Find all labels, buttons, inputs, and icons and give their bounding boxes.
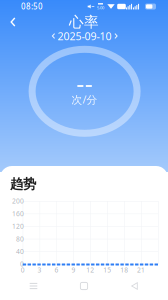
staticText: 200 [12, 197, 24, 205]
staticText: 心率 [69, 13, 99, 31]
staticText: 6 [54, 266, 58, 274]
staticText: 08:50 [21, 1, 43, 12]
staticText: 15 [103, 266, 111, 274]
button[interactable]: 主屏幕 [67, 276, 101, 296]
staticText: 0 [20, 260, 24, 268]
staticText: 次/分 [72, 92, 98, 106]
staticText: 80 [16, 234, 24, 243]
staticText: 0 [21, 266, 25, 274]
button[interactable]: 最近任务 [16, 276, 50, 296]
staticText: 趋势 [10, 176, 36, 192]
staticText: 21 [137, 266, 145, 274]
button[interactable]: 返回 [1, 10, 25, 34]
staticText: 160 [12, 209, 24, 218]
staticText: 18 [120, 266, 128, 274]
button[interactable]: 前一天 [47, 29, 60, 42]
staticText: 120 [12, 222, 24, 231]
staticText: 5.00 [97, 5, 104, 10]
staticText: 12 [86, 266, 94, 274]
staticText: 40 [16, 247, 24, 256]
staticText: 2025-09-10 [57, 29, 111, 43]
button[interactable]: 返回 [117, 276, 151, 296]
button[interactable]: 后一天 [109, 29, 122, 42]
staticText: 3 [38, 266, 42, 274]
staticText: 9 [71, 266, 75, 274]
